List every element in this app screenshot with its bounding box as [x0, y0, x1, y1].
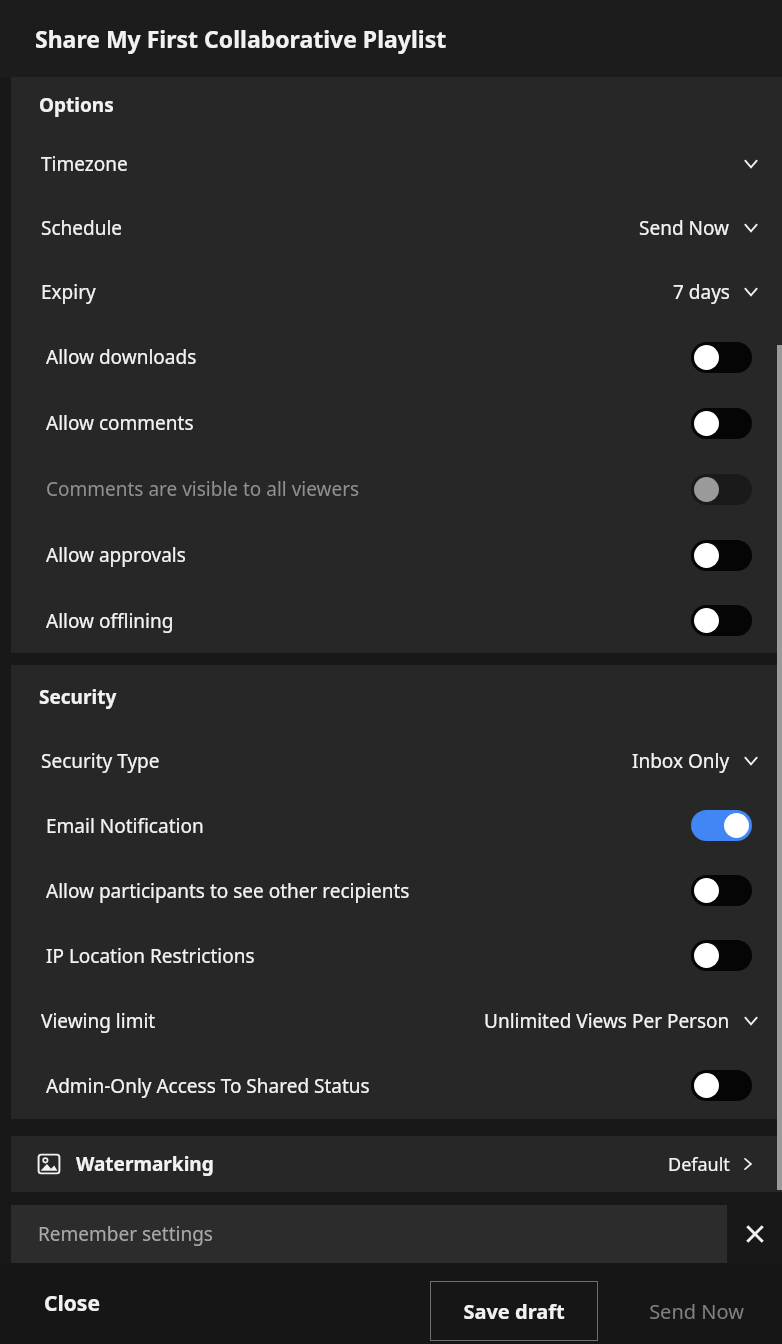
button[interactable]	[691, 940, 752, 971]
staticText: Remember settings	[38, 1221, 213, 1247]
staticText: 7 days	[673, 279, 730, 305]
staticText: Comments are visible to all viewers	[46, 476, 360, 502]
button[interactable]: Allow comments	[11, 390, 782, 456]
button[interactable]: Viewing limit	[11, 988, 782, 1053]
staticText: Viewing limit	[41, 1008, 156, 1034]
button[interactable]: Security Type	[11, 728, 782, 793]
staticText: Security	[39, 684, 117, 710]
staticText: Share My First Collaborative Playlist	[35, 23, 447, 54]
button[interactable]: Allow approvals	[11, 522, 782, 588]
staticText: Expiry	[41, 279, 96, 305]
button[interactable]	[691, 605, 752, 636]
staticText: Inbox Only	[632, 748, 730, 774]
button[interactable]: Allow offlining	[11, 588, 782, 653]
staticText: Allow approvals	[46, 542, 186, 568]
button[interactable]	[691, 408, 752, 439]
button[interactable]: Admin-Only Access To Shared Status	[11, 1053, 782, 1118]
staticText: Allow offlining	[46, 608, 174, 634]
button[interactable]	[691, 875, 752, 906]
staticText: Timezone	[41, 151, 128, 177]
staticText: Allow comments	[46, 410, 194, 436]
staticText: IP Location Restrictions	[46, 943, 255, 969]
button[interactable]: IP Location Restrictions	[11, 923, 782, 988]
staticText: Email Notification	[46, 813, 204, 839]
button[interactable]: Remember settings	[11, 1205, 727, 1263]
button[interactable]	[691, 474, 752, 505]
button[interactable]: Comments are visible to all viewers	[11, 456, 782, 522]
staticText: Security Type	[41, 748, 160, 774]
button[interactable]	[691, 540, 752, 571]
staticText: Send Now	[649, 1298, 744, 1325]
button[interactable]	[691, 810, 752, 841]
staticText: Allow participants to see other recipien…	[46, 878, 410, 904]
button[interactable]: Schedule	[11, 196, 782, 260]
staticText: Admin-Only Access To Shared Status	[46, 1073, 370, 1099]
staticText: Schedule	[41, 215, 123, 241]
button[interactable]: Expiry	[11, 260, 782, 324]
staticText: Default	[668, 1152, 730, 1177]
button[interactable]: Watermarking	[11, 1136, 782, 1192]
button[interactable]: Close	[22, 1275, 122, 1332]
staticText: Watermarking	[76, 1151, 214, 1177]
button[interactable]: Save draft	[430, 1281, 598, 1341]
staticText: Allow downloads	[46, 344, 197, 370]
button[interactable]: Allow participants to see other recipien…	[11, 858, 782, 923]
staticText: Options	[39, 92, 114, 118]
staticText: Unlimited Views Per Person	[484, 1008, 730, 1034]
button[interactable]	[691, 342, 752, 373]
button[interactable]	[691, 1070, 752, 1101]
button[interactable]: Send Now	[620, 1281, 772, 1341]
staticText: Send Now	[639, 215, 730, 241]
button[interactable]: Allow downloads	[11, 324, 782, 390]
button[interactable]: Email Notification	[11, 793, 782, 858]
staticText: Save draft	[463, 1298, 565, 1325]
staticText: Close	[44, 1289, 100, 1318]
button[interactable]: Timezone	[11, 132, 782, 196]
button[interactable]: Dismiss	[727, 1205, 782, 1263]
